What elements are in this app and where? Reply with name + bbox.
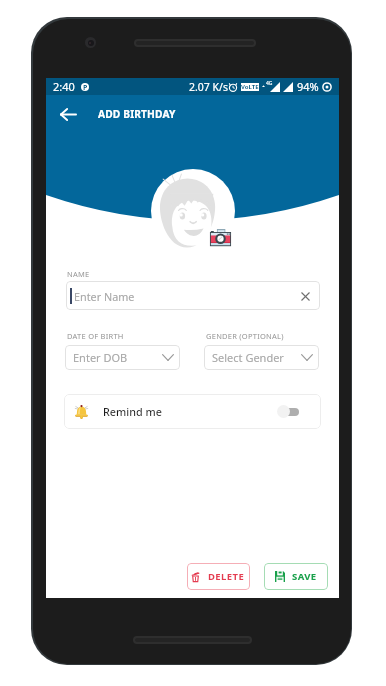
staticText: ADD BIRTHDAY (98, 107, 176, 121)
staticText: SAVE (292, 570, 317, 583)
button[interactable]: Remind me (64, 394, 321, 429)
staticText: DELETE (208, 570, 245, 583)
staticText: VoLTE (241, 83, 259, 91)
staticText: DATE OF BIRTH (67, 331, 124, 341)
button[interactable]: Back (53, 99, 83, 129)
staticText: 4G (266, 80, 273, 87)
staticText: Select Gender (212, 350, 284, 365)
button[interactable]: Enter DOB (65, 345, 180, 370)
staticText: NAME (67, 269, 90, 279)
button[interactable]: SAVE (264, 563, 328, 590)
button[interactable]: Enter Name (66, 281, 320, 310)
button[interactable]: Select Gender (204, 345, 319, 370)
button[interactable]: DELETE (187, 563, 250, 590)
staticText: Enter Name (74, 289, 135, 304)
staticText: P (83, 83, 88, 91)
staticText: 94% (297, 79, 319, 94)
button[interactable]: Change photo (210, 229, 231, 246)
staticText: GENDER (OPTIONAL) (206, 331, 284, 341)
button[interactable]: Remind me toggle (277, 405, 299, 419)
staticText: 2.07 K/s (189, 80, 228, 94)
staticText: 2:40 (53, 79, 75, 94)
staticText: Remind me (103, 404, 162, 419)
staticText: Enter DOB (73, 350, 128, 365)
